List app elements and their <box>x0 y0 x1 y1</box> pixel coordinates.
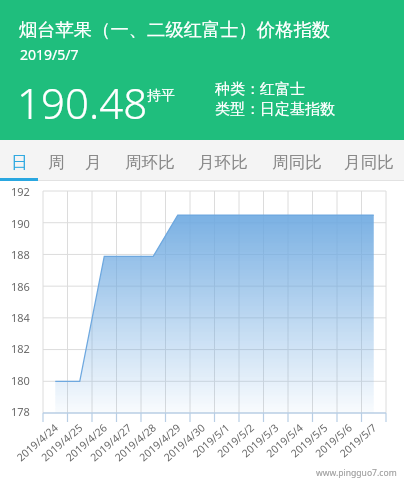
button[interactable]: 月同比 <box>341 140 397 181</box>
button[interactable]: 周 <box>41 140 71 181</box>
button[interactable]: 月环比 <box>195 140 251 181</box>
staticText: 周 <box>48 152 65 173</box>
staticText: 持平 <box>147 87 175 105</box>
staticText: 类型：日定基指数 <box>215 100 335 119</box>
button[interactable]: 月 <box>78 140 108 181</box>
staticText: 2019/5/7 <box>20 45 79 64</box>
staticText: 周同比 <box>272 152 322 173</box>
staticText: 月同比 <box>344 152 394 173</box>
staticText: 日 <box>11 152 28 173</box>
staticText: 周环比 <box>125 152 175 173</box>
button[interactable]: 日 <box>4 140 34 181</box>
staticText: 月环比 <box>198 152 248 173</box>
staticText: 190.48 <box>17 74 148 131</box>
button[interactable]: 周环比 <box>122 140 178 181</box>
staticText: 月 <box>85 152 102 173</box>
staticText: 种类：红富士 <box>215 80 305 99</box>
button[interactable]: 周同比 <box>269 140 325 181</box>
staticText: 烟台苹果（一、二级红富士）价格指数 <box>19 18 331 41</box>
